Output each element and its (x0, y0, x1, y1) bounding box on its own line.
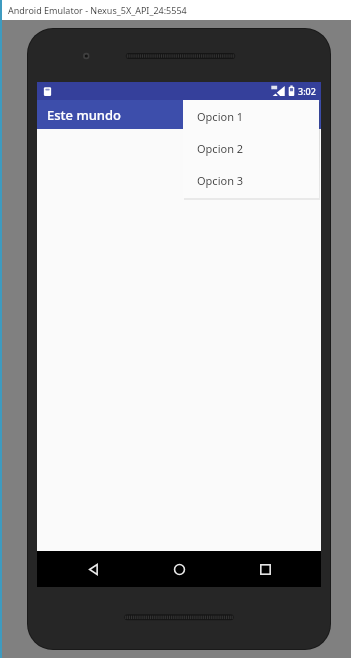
button[interactable]: Home (149, 551, 209, 587)
button[interactable]: Opcion 1 (183, 100, 319, 132)
button[interactable]: Opcion 2 (183, 132, 319, 164)
staticText: 3:02 (298, 85, 316, 97)
button[interactable]: Recent apps (235, 551, 295, 587)
staticText: Opcion 3 (197, 173, 244, 188)
button[interactable]: Back (63, 551, 123, 587)
staticText: Opcion 1 (197, 109, 244, 124)
staticText: Android Emulator - Nexus_5X_API_24:5554 (8, 4, 187, 16)
staticText: Este mundo (47, 106, 121, 124)
button[interactable]: Opcion 3 (183, 164, 319, 196)
staticText: Opcion 2 (197, 141, 244, 156)
